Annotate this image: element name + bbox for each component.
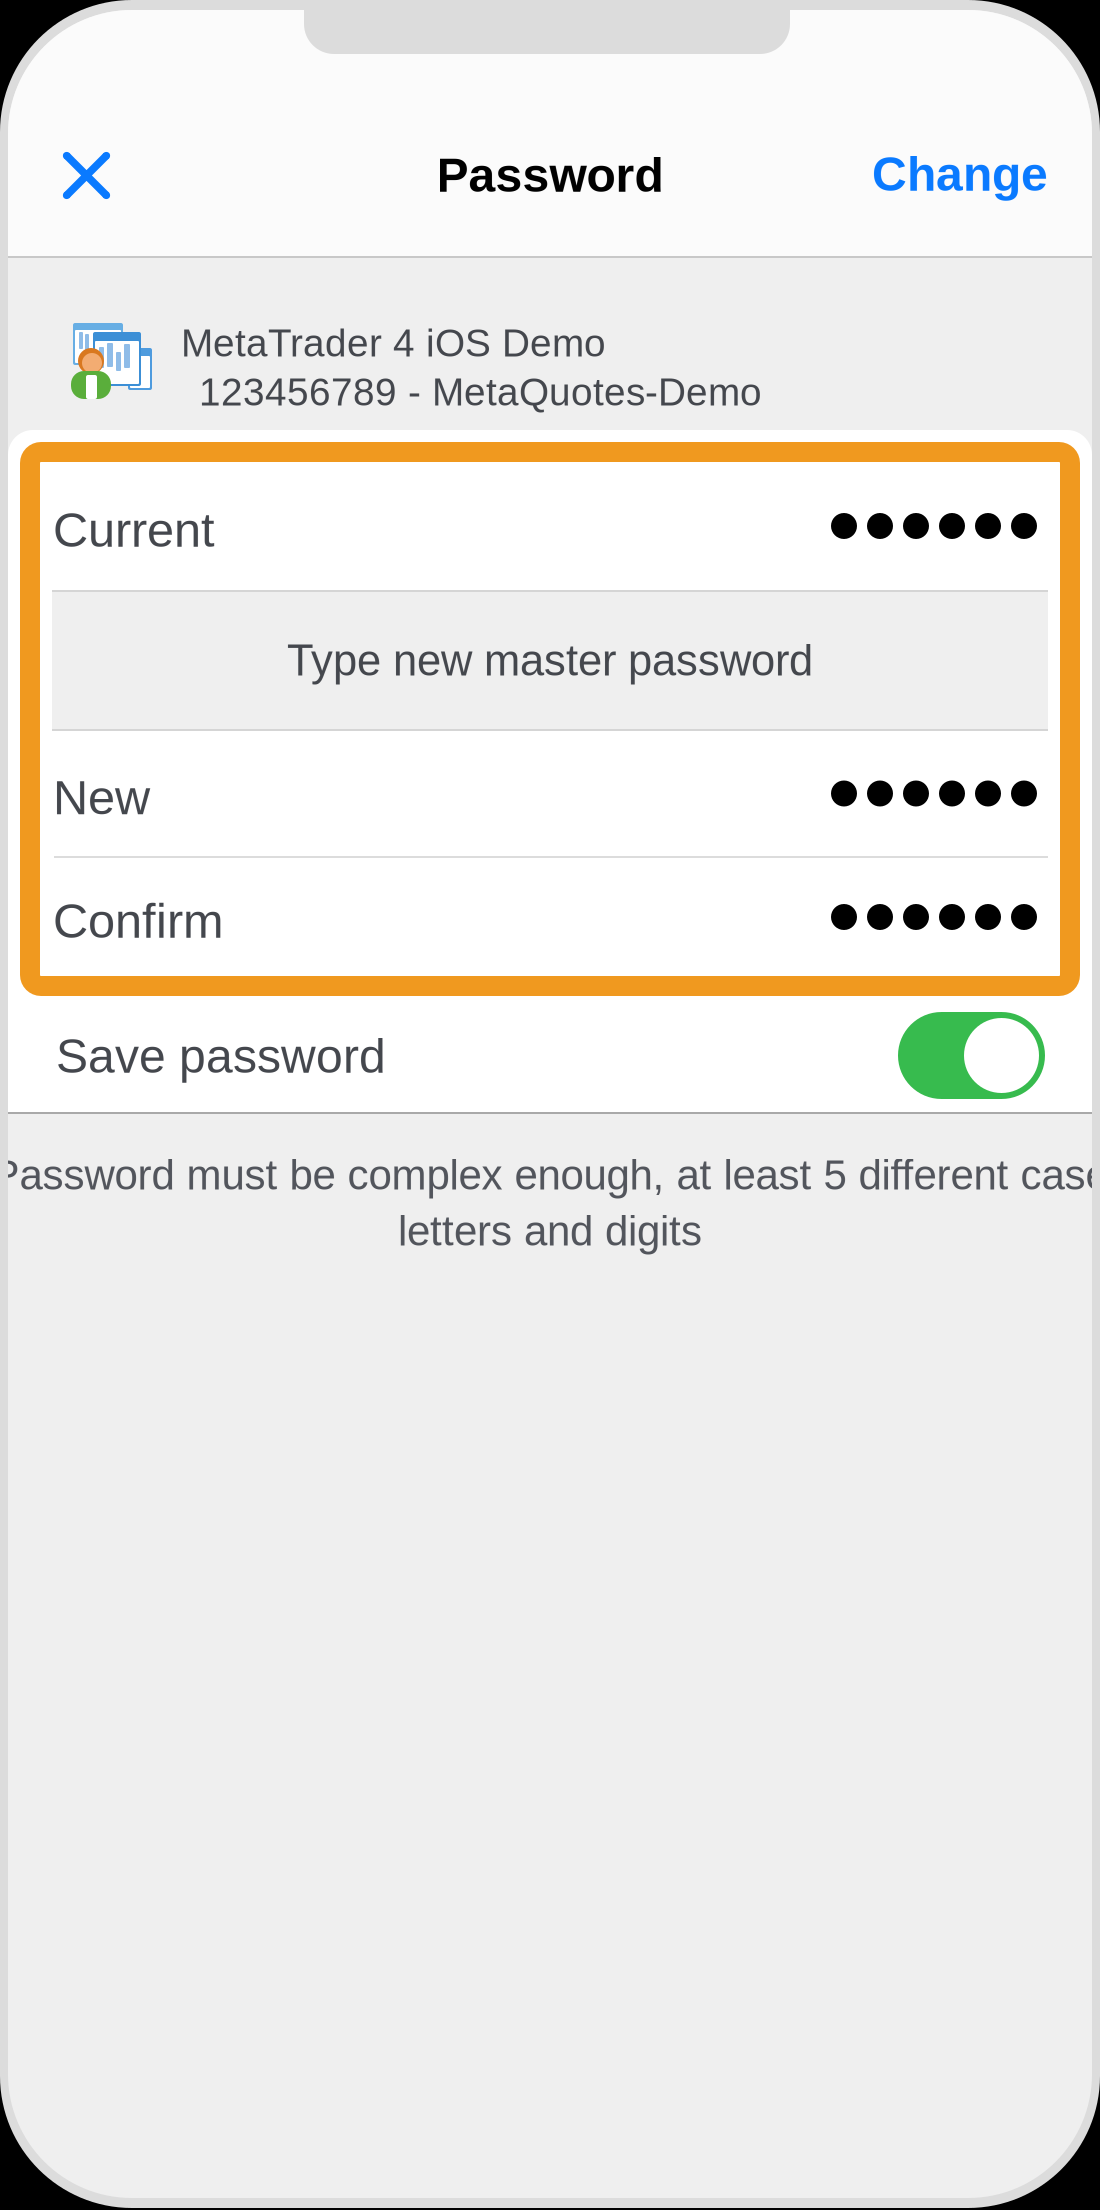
staticText: Save password: [56, 1029, 386, 1083]
staticText: Confirm: [53, 894, 224, 948]
button[interactable]: Close: [48, 137, 125, 214]
staticText: 123456789 - MetaQuotes-Demo: [199, 370, 762, 414]
staticText: Current: [53, 503, 215, 557]
button[interactable]: Change: [812, 127, 1064, 221]
staticText: MetaTrader 4 iOS Demo: [181, 321, 606, 365]
staticText: letters and digits: [398, 1207, 702, 1254]
staticText: Type new master password: [287, 636, 813, 685]
staticText: Change: [872, 147, 1048, 201]
button[interactable]: Confirm: [48, 858, 1060, 976]
staticText: Password must be complex enough, at leas…: [0, 1151, 1100, 1198]
button[interactable]: New: [48, 731, 1060, 856]
button[interactable]: Current: [48, 462, 1060, 590]
staticText: New: [53, 770, 150, 825]
button[interactable]: Save password: [8, 1000, 1092, 1112]
staticText: Password: [436, 148, 663, 202]
